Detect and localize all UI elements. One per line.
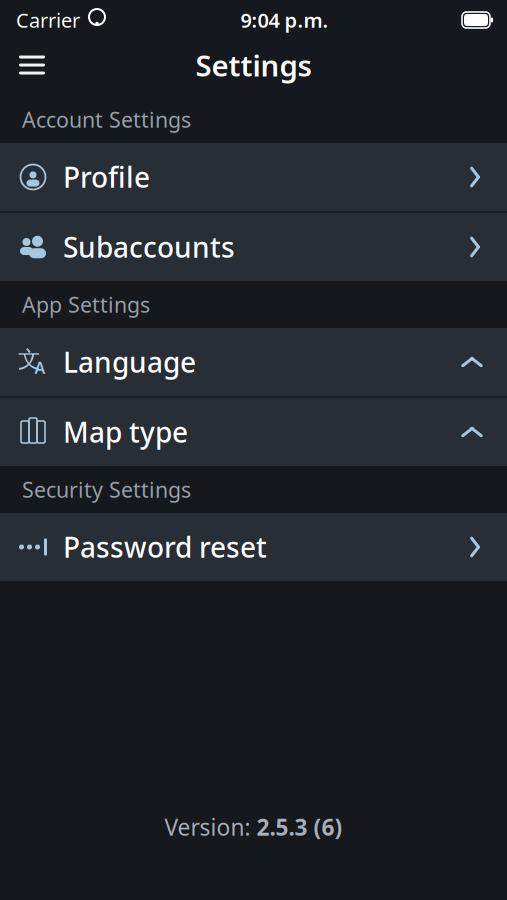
- staticText: Subaccounts: [63, 228, 235, 266]
- staticText: Language: [63, 343, 196, 381]
- button[interactable]: Password reset: [0, 513, 507, 581]
- staticText: Carrier: [16, 7, 80, 33]
- staticText: A: [34, 357, 45, 378]
- staticText: Account Settings: [22, 105, 191, 134]
- staticText: 文: [18, 346, 41, 373]
- staticText: Profile: [63, 158, 150, 196]
- button[interactable]: Profile: [0, 143, 507, 211]
- staticText: Password reset: [63, 528, 267, 566]
- button[interactable]: 文: [0, 328, 507, 396]
- button[interactable]: Subaccounts: [0, 213, 507, 281]
- button[interactable]: Menu: [8, 43, 56, 87]
- button[interactable]: Map type: [0, 398, 507, 466]
- staticText: Security Settings: [22, 475, 191, 504]
- staticText: Map type: [63, 413, 188, 451]
- staticText: Version:: [164, 812, 256, 842]
- staticText: Settings: [195, 45, 311, 84]
- staticText: 9:04 p.m.: [240, 7, 328, 33]
- staticText: 2.5.3 (6): [256, 812, 342, 842]
- staticText: App Settings: [22, 290, 150, 319]
